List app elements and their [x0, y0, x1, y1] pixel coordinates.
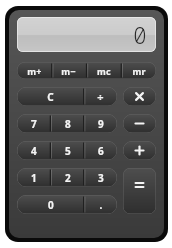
staticText: 2: [65, 171, 71, 185]
staticText: 6: [98, 144, 104, 158]
button[interactable]: Multiply: [123, 87, 156, 106]
staticText: 8: [65, 117, 71, 131]
staticText: mc: [97, 65, 111, 77]
staticText: m−: [61, 65, 76, 77]
staticText: 4: [31, 144, 37, 158]
staticText: 9: [98, 117, 104, 131]
staticText: 0: [133, 19, 147, 50]
button[interactable]: 6: [84, 141, 117, 160]
staticText: .: [99, 198, 103, 212]
staticText: m+: [27, 65, 42, 77]
button[interactable]: 9: [84, 114, 117, 133]
button[interactable]: Clear: [17, 87, 84, 106]
button[interactable]: 4: [17, 141, 51, 160]
button[interactable]: Add: [123, 141, 156, 160]
button[interactable]: Memory subtract: [51, 62, 86, 79]
button[interactable]: Decimal point: [84, 195, 117, 214]
staticText: 7: [31, 117, 37, 131]
button[interactable]: 1: [17, 168, 51, 187]
button[interactable]: 8: [51, 114, 84, 133]
staticText: C: [47, 90, 54, 104]
staticText: 5: [65, 144, 71, 158]
button[interactable]: Equals: [123, 168, 156, 214]
staticText: 1: [31, 171, 37, 185]
staticText: mr: [132, 65, 146, 77]
button[interactable]: 5: [51, 141, 84, 160]
button[interactable]: Memory add: [17, 62, 51, 79]
staticText: 0: [48, 198, 54, 212]
button[interactable]: Memory recall: [121, 62, 156, 79]
button[interactable]: 3: [84, 168, 117, 187]
button[interactable]: Subtract: [123, 114, 156, 133]
button[interactable]: 7: [17, 114, 51, 133]
button[interactable]: 0: [17, 195, 84, 214]
staticText: ÷: [97, 89, 104, 104]
button[interactable]: Divide: [84, 87, 117, 106]
staticText: 3: [98, 171, 104, 185]
button[interactable]: Memory clear: [86, 62, 121, 79]
button[interactable]: 2: [51, 168, 84, 187]
